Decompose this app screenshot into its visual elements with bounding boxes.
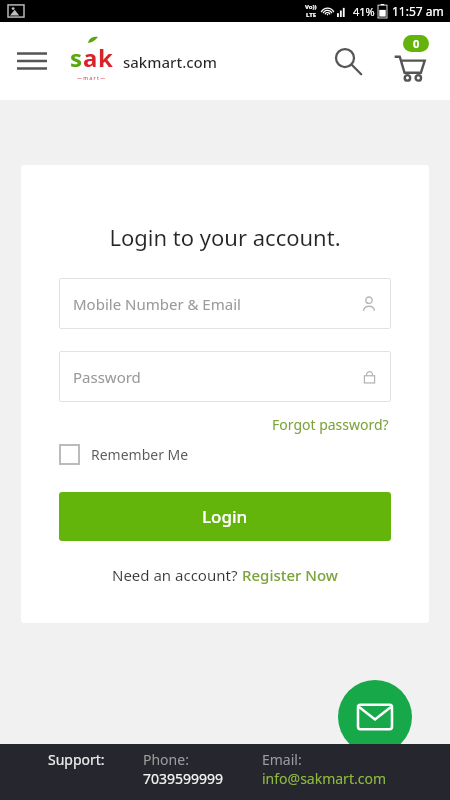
staticText: Mobile Number & Email [73,294,361,314]
button[interactable]: Remember Me [59,444,391,465]
staticText: Support: [48,750,105,769]
staticText: Password [73,367,362,387]
staticText: Need an account? [112,565,242,585]
staticText: k [98,41,113,74]
staticText: 11:57 am [392,3,444,19]
staticText: 0 [413,36,420,51]
button[interactable]: Mobile Number & Email [59,278,391,329]
staticText: Vo)) [305,3,317,11]
button[interactable]: Contact us by email [338,680,412,754]
staticText: sakmart.com [123,52,217,72]
button[interactable]: Shopping cart, 0 items [384,35,436,87]
staticText: — m a r t — [77,75,106,82]
staticText: LTE [306,11,317,19]
button[interactable]: Forgot password? [270,413,391,436]
button[interactable]: Search [324,37,372,85]
button[interactable]: info@sakmart.com [262,769,386,788]
button[interactable]: Password [59,351,391,402]
button[interactable]: 7039599999 [143,769,224,788]
staticText: Login [202,505,248,528]
staticText: Phone: [143,750,189,769]
staticText: Remember Me [91,445,189,464]
button[interactable]: Open menu [8,37,56,85]
staticText: Register Now [242,565,338,585]
staticText: Email: [262,750,302,769]
button[interactable]: Need an account? [112,565,338,585]
staticText: Forgot password? [272,415,389,434]
staticText: Login to your account. [109,222,341,252]
staticText: a [83,41,98,74]
button[interactable]: Login [59,492,391,541]
staticText: s [70,41,83,74]
staticText: 41% [353,4,375,19]
